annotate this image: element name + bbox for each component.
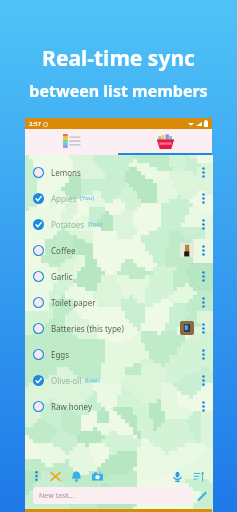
button[interactable]: Check Toilet paper [33, 297, 44, 308]
staticText: Coffee [51, 245, 76, 256]
button[interactable]: Check Raw honey [25, 393, 212, 419]
button[interactable]: Reminders [69, 469, 83, 483]
staticText: (You) [88, 220, 103, 228]
button[interactable]: Check Raw honey [33, 401, 44, 412]
button[interactable]: Check Toilet paper [25, 289, 212, 315]
button[interactable]: Checked Apples [33, 193, 44, 204]
staticText: Potatoes [51, 219, 85, 230]
button[interactable]: More options for Raw honey [198, 396, 208, 416]
staticText: New task... [39, 491, 75, 501]
button[interactable]: Checked Potatoes [33, 219, 44, 230]
button[interactable]: Edit [196, 490, 208, 502]
button[interactable]: New task... [33, 487, 192, 504]
button[interactable]: Sort [192, 469, 206, 483]
button[interactable]: Check Coffee [33, 245, 44, 256]
staticText: Olive-oil [51, 375, 82, 386]
staticText: (Lisa) [85, 376, 100, 384]
staticText: Batteries (this type) [51, 323, 124, 334]
button[interactable]: Checked Potatoes [25, 211, 212, 237]
button[interactable]: Add photo [90, 469, 104, 483]
staticText: Garlic [51, 271, 73, 282]
staticText: 2:57 [29, 120, 41, 128]
button[interactable]: Clear completed [48, 469, 62, 483]
staticText: Real-time sync [42, 44, 195, 73]
staticText: Raw honey [51, 401, 92, 412]
button[interactable]: More options for Batteries (this type) [198, 318, 208, 338]
button[interactable]: Photo for Coffee [180, 243, 194, 257]
button[interactable]: Check Coffee [25, 237, 212, 263]
button[interactable]: Overflow menu [31, 471, 41, 481]
staticText: (You) [80, 194, 95, 202]
button[interactable]: Check Eggs [33, 349, 44, 360]
button[interactable]: More options for Apples [198, 188, 208, 208]
button[interactable]: Check Lemons [25, 159, 212, 185]
staticText: between list members [29, 80, 208, 102]
button[interactable]: Check Garlic [25, 263, 212, 289]
button[interactable]: Checked Olive-oil [25, 367, 212, 393]
button[interactable]: Photo for Batteries (this type) [180, 321, 194, 335]
button[interactable]: Shopping basket tab [118, 129, 212, 153]
button[interactable]: More options for Eggs [198, 344, 208, 364]
button[interactable]: Voice input [170, 469, 184, 483]
button[interactable]: Lists tab [25, 129, 118, 153]
button[interactable]: Check Batteries (this type) [25, 315, 212, 341]
button[interactable]: More options for Coffee [198, 240, 208, 260]
staticText: Toilet paper [51, 297, 96, 308]
button[interactable]: More options for Lemons [198, 162, 208, 182]
staticText: Eggs [51, 349, 70, 360]
button[interactable]: Check Garlic [33, 271, 44, 282]
button[interactable]: More options for Toilet paper [198, 292, 208, 312]
button[interactable]: Checked Olive-oil [33, 375, 44, 386]
staticText: Apples [51, 193, 77, 204]
button[interactable]: Check Eggs [25, 341, 212, 367]
button[interactable]: Checked Apples [25, 185, 212, 211]
button[interactable]: More options for Olive-oil [198, 370, 208, 390]
staticText: Lemons [51, 167, 81, 178]
button[interactable]: Check Lemons [33, 167, 44, 178]
button[interactable]: Check Batteries (this type) [33, 323, 44, 334]
button[interactable]: More options for Potatoes [198, 214, 208, 234]
button[interactable]: More options for Garlic [198, 266, 208, 286]
